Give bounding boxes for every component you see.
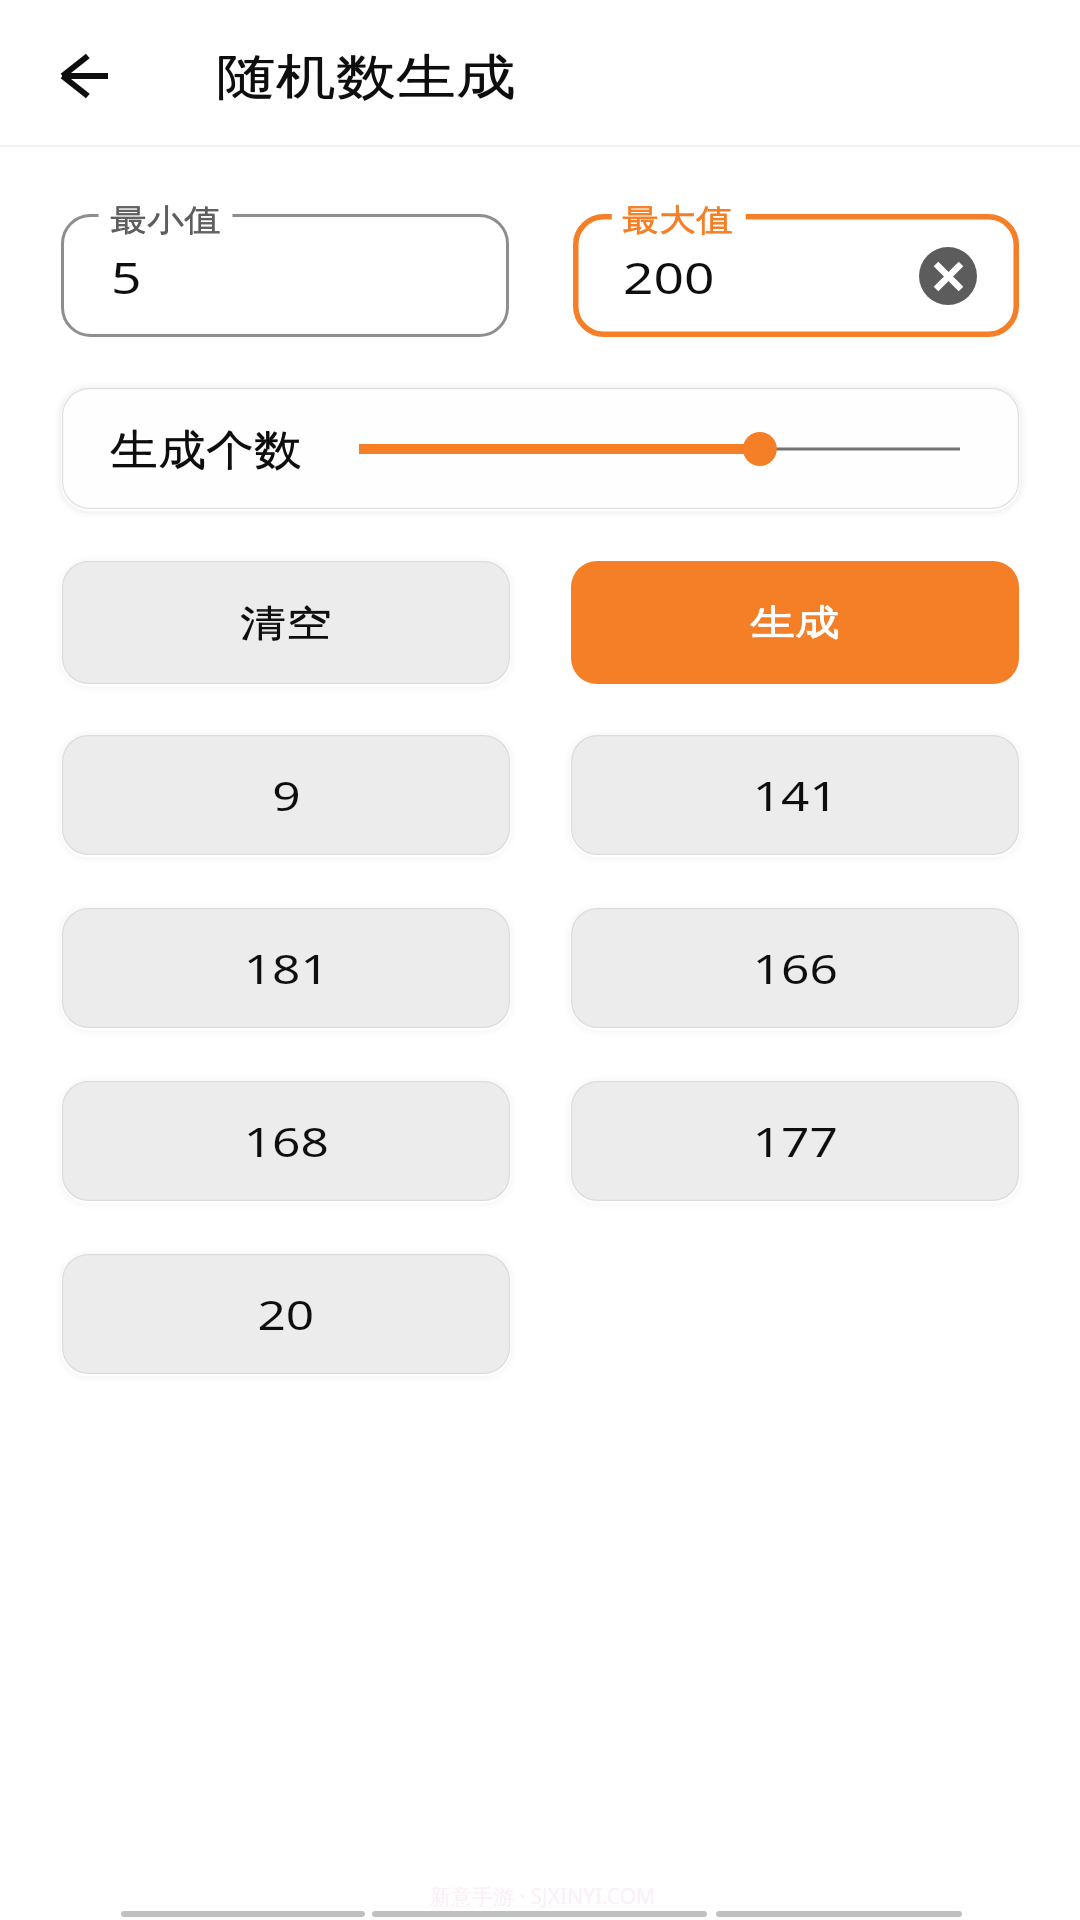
staticText: 9 <box>272 768 301 822</box>
staticText: 177 <box>753 1114 838 1168</box>
staticText: 随机数生成 <box>216 48 516 108</box>
staticText: 清空 <box>240 600 332 646</box>
button[interactable]: 200 <box>573 214 1019 337</box>
button[interactable]: 生成 <box>571 561 1019 684</box>
staticText: 清空 <box>240 601 332 647</box>
button[interactable]: 177 <box>571 1081 1019 1201</box>
button[interactable]: 168 <box>62 1081 510 1201</box>
button[interactable]: 清空 <box>62 561 510 684</box>
staticText: 生成个数 <box>110 425 302 477</box>
staticText: 生成个数 <box>110 424 302 476</box>
staticText: 最大值 <box>622 200 733 239</box>
staticText: 生成 <box>750 601 840 646</box>
button[interactable]: 166 <box>571 908 1019 1028</box>
button[interactable]: 9 <box>62 735 510 855</box>
button[interactable]: Recents <box>716 1911 962 1917</box>
button[interactable]: 141 <box>571 735 1019 855</box>
button[interactable]: 5 <box>61 214 509 337</box>
staticText: 随机数生成 <box>216 47 516 107</box>
staticText: 200 <box>623 248 715 307</box>
button[interactable]: 181 <box>62 908 510 1028</box>
button[interactable]: 20 <box>62 1254 510 1374</box>
staticText: 生成 <box>750 600 840 645</box>
staticText: 181 <box>244 941 329 995</box>
staticText: 5 <box>111 248 142 307</box>
staticText: 新意手游 · SJXINYI.COM <box>430 1882 656 1911</box>
staticText: 20 <box>257 1287 314 1341</box>
staticText: 最小值 <box>110 200 221 239</box>
button[interactable]: Clear <box>919 247 977 305</box>
staticText: 141 <box>753 768 838 822</box>
button[interactable]: Back <box>44 36 124 116</box>
staticText: 168 <box>244 1114 329 1168</box>
staticText: 最小值 <box>110 201 221 240</box>
button[interactable]: Back <box>121 1911 365 1917</box>
staticText: 166 <box>753 941 838 995</box>
staticText: 最大值 <box>622 201 733 240</box>
